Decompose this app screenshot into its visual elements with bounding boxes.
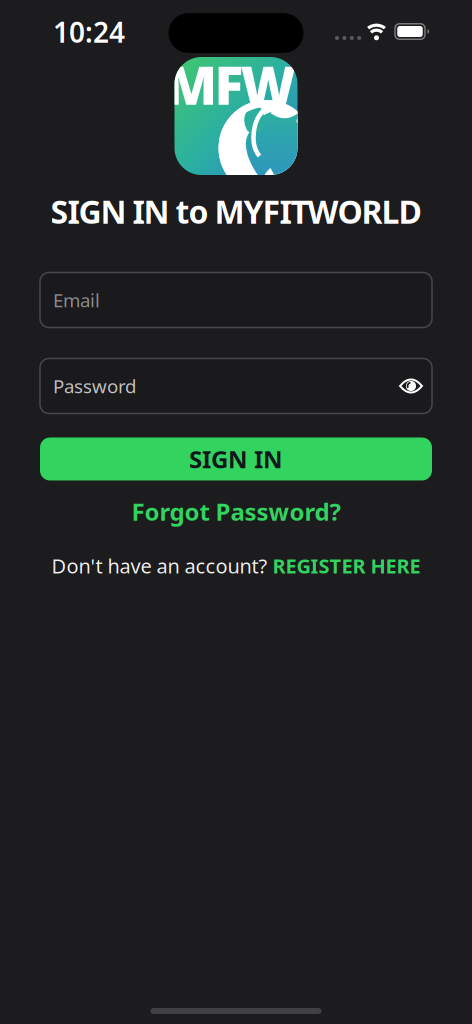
button[interactable]: Don't have an account?	[51, 552, 420, 579]
button[interactable]: Forgot Password?	[123, 487, 348, 535]
button[interactable]: SIGN IN	[40, 437, 432, 480]
button[interactable]: Password	[40, 358, 432, 413]
button[interactable]: Email	[40, 272, 432, 327]
staticText: Forgot Password?	[131, 495, 340, 527]
staticText: 10:24	[53, 13, 125, 51]
staticText: SIGN IN to MYFITWORLD	[50, 190, 421, 232]
staticText: Don't have an account?	[51, 552, 267, 579]
staticText: SIGN IN	[189, 443, 283, 475]
staticText: MFW	[165, 49, 295, 119]
staticText: Email	[53, 288, 100, 312]
staticText: Password	[53, 374, 136, 398]
staticText: REGISTER HERE	[272, 552, 420, 579]
